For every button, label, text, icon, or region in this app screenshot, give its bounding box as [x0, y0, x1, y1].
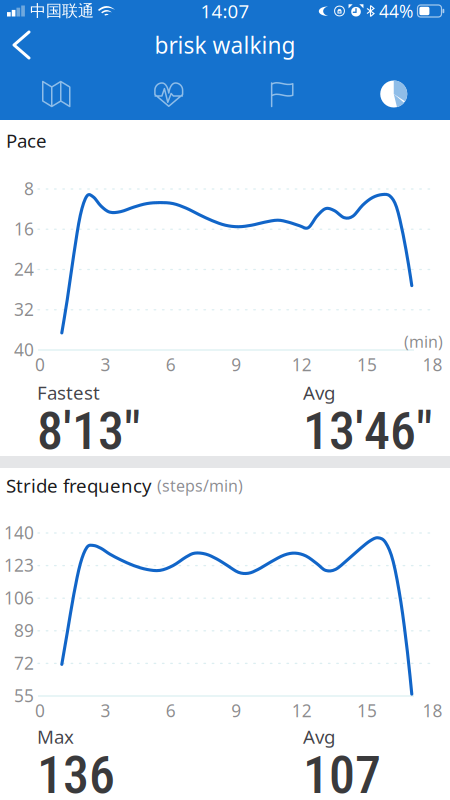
staticText: 55: [14, 684, 34, 707]
button[interactable]: Route map: [0, 68, 112, 120]
button[interactable]: Laps: [225, 68, 337, 120]
staticText: 12: [292, 699, 312, 722]
staticText: (steps/min): [157, 475, 243, 496]
staticText: Pace: [6, 128, 47, 153]
staticText: 44%: [379, 0, 413, 22]
staticText: 40: [14, 338, 34, 361]
staticText: 8: [24, 177, 34, 200]
staticText: Avg: [303, 724, 335, 749]
staticText: 140: [4, 521, 34, 544]
staticText: Fastest: [37, 380, 100, 405]
staticText: 15: [357, 353, 377, 376]
staticText: 89: [14, 619, 34, 642]
staticText: Avg: [303, 380, 335, 405]
staticText: 0: [35, 699, 45, 722]
staticText: 13'46": [303, 401, 433, 462]
staticText: 3: [100, 353, 110, 376]
staticText: 72: [14, 651, 34, 674]
button[interactable]: Heart rate: [112, 68, 225, 120]
staticText: 9: [231, 699, 241, 722]
button[interactable]: Back: [0, 24, 47, 66]
staticText: Stride frequency: [6, 473, 152, 498]
staticText: (min): [404, 331, 443, 352]
staticText: 8'13": [37, 401, 141, 462]
staticText: 3: [100, 699, 110, 722]
staticText: 18: [422, 353, 442, 376]
staticText: 32: [14, 298, 34, 321]
staticText: Max: [37, 724, 74, 749]
staticText: 6: [166, 699, 176, 722]
staticText: 15: [357, 699, 377, 722]
staticText: 14:07: [200, 0, 249, 23]
staticText: 18: [422, 699, 442, 722]
staticText: 16: [14, 217, 34, 240]
staticText: 0: [35, 353, 45, 376]
staticText: 24: [14, 257, 34, 280]
staticText: 9: [231, 353, 241, 376]
staticText: 106: [4, 586, 34, 609]
staticText: 107: [303, 745, 381, 800]
staticText: 6: [166, 353, 176, 376]
staticText: 123: [4, 554, 34, 577]
staticText: 中国联通: [25, 1, 99, 21]
staticText: 136: [37, 745, 115, 800]
staticText: brisk walking: [154, 30, 295, 60]
button[interactable]: Statistics: [337, 68, 450, 120]
staticText: 12: [292, 353, 312, 376]
